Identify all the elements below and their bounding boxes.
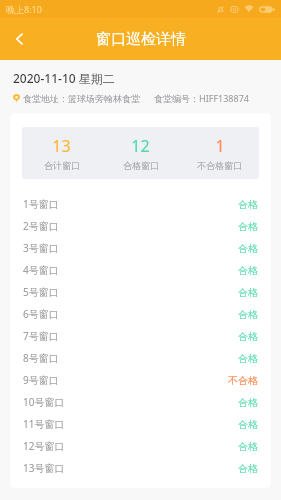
button[interactable]: 11号窗口 [10,413,271,435]
staticText: 合格 [238,440,258,453]
staticText: 3号窗口 [23,241,59,255]
staticText: 11号窗口 [23,417,65,431]
button[interactable]: 10号窗口 [10,391,271,413]
staticText: 13 [52,135,71,157]
button[interactable]: 13 [22,135,101,171]
staticText: 合格 [238,308,258,321]
staticText: 4号窗口 [23,263,59,277]
button[interactable]: 5号窗口 [10,281,271,303]
staticText: 10号窗口 [23,395,65,409]
staticText: 8号窗口 [23,351,59,365]
staticText: 2号窗口 [23,219,59,233]
button[interactable]: 12号窗口 [10,435,271,457]
staticText: 不合格 [228,374,258,387]
staticText: 13号窗口 [23,461,65,475]
staticText: 窗口巡检详情 [96,30,186,49]
button[interactable]: 3号窗口 [10,237,271,259]
staticText: 合格 [238,220,258,233]
staticText: 合格 [238,418,258,431]
staticText: 合格窗口 [123,160,159,171]
button[interactable]: 9号窗口 [10,369,271,391]
button[interactable]: 1 [180,135,259,171]
button[interactable]: 12 [101,135,180,171]
button[interactable]: 13号窗口 [10,457,271,479]
button[interactable]: 6号窗口 [10,303,271,325]
staticText: 6号窗口 [23,307,59,321]
staticText: 食堂地址：篮球场旁翰林食堂 [23,93,140,104]
staticText: 12 [131,135,150,157]
staticText: 2020-11-10 星期二 [13,70,115,86]
staticText: 1号窗口 [23,197,59,211]
button[interactable]: 8号窗口 [10,347,271,369]
button[interactable]: 7号窗口 [10,325,271,347]
staticText: 合格 [238,396,258,409]
staticText: 合格 [238,330,258,343]
button[interactable]: 4号窗口 [10,259,271,281]
staticText: 5号窗口 [23,285,59,299]
staticText: 12号窗口 [23,439,65,453]
staticText: 合格 [238,242,258,255]
staticText: 合格 [238,264,258,277]
staticText: 合格 [238,462,258,475]
button[interactable]: Back [0,19,40,59]
staticText: 合格 [238,198,258,211]
staticText: 7号窗口 [23,329,59,343]
staticText: 合格 [238,286,258,299]
button[interactable]: 2号窗口 [10,215,271,237]
staticText: 不合格窗口 [197,160,242,171]
staticText: 合格 [238,352,258,365]
button[interactable]: 1号窗口 [10,193,271,215]
staticText: 晚上8:10 [6,3,42,15]
staticText: 9号窗口 [23,373,59,387]
staticText: 1 [215,135,225,157]
staticText: 食堂编号：HIFF138874 [154,92,249,104]
staticText: 合计窗口 [44,160,80,171]
